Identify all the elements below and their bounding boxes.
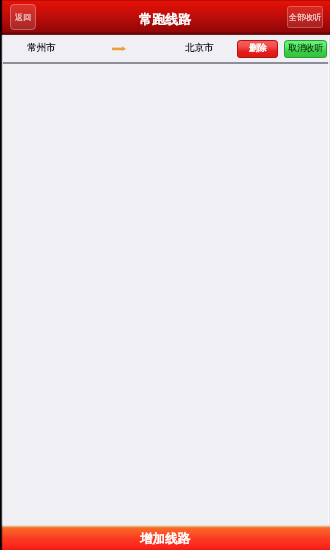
staticText: 删除 bbox=[249, 43, 267, 54]
staticText: 返回 bbox=[15, 12, 31, 22]
button[interactable]: 常州市 bbox=[0, 35, 330, 62]
staticText: 取消收听 bbox=[288, 43, 324, 54]
staticText: 增加线路 bbox=[140, 531, 190, 547]
button[interactable]: 取消收听 bbox=[284, 40, 327, 58]
staticText: 北京市 bbox=[185, 42, 214, 54]
other: Route direction bbox=[112, 44, 126, 53]
button[interactable]: 删除 bbox=[237, 40, 278, 58]
button[interactable]: 返回 bbox=[10, 4, 36, 30]
staticText: 常跑线路 bbox=[139, 11, 191, 27]
button[interactable]: 全部收听 bbox=[287, 6, 323, 28]
button[interactable]: 增加线路 bbox=[0, 524, 330, 550]
staticText: 全部收听 bbox=[289, 12, 321, 22]
staticText: 常州市 bbox=[27, 42, 56, 54]
